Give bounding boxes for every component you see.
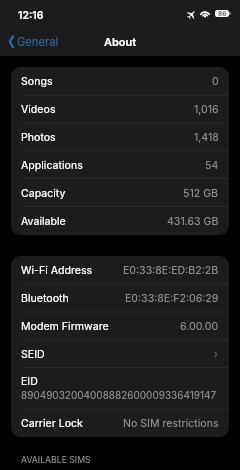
staticText: Bluetooth xyxy=(21,292,69,305)
other: Battery 86 percent xyxy=(215,10,229,17)
staticText: General xyxy=(17,35,59,49)
button[interactable]: SEID xyxy=(11,340,229,368)
staticText: Photos xyxy=(21,131,56,144)
staticText: 431.63 GB xyxy=(167,215,219,228)
staticText: Applications xyxy=(21,159,83,172)
staticText: 6.00.00 xyxy=(180,320,219,333)
staticText: Songs xyxy=(21,75,53,88)
button[interactable]: General xyxy=(4,32,65,48)
staticText: AVAILABLE SIMS xyxy=(21,455,91,466)
staticText: Modem Firmware xyxy=(21,320,109,333)
staticText: Capacity xyxy=(21,187,66,200)
button[interactable]: Photos xyxy=(11,123,229,151)
staticText: 1,016 xyxy=(194,103,219,116)
other: Wi-Fi xyxy=(200,10,210,17)
staticText: 12:16 xyxy=(18,9,44,22)
button[interactable]: Bluetooth xyxy=(11,284,229,312)
button[interactable]: Available xyxy=(11,207,229,235)
staticText: 54 xyxy=(205,159,219,172)
staticText: 512 GB xyxy=(183,187,219,200)
other: Airplane mode xyxy=(185,8,198,21)
button[interactable]: Videos xyxy=(11,95,229,123)
staticText: Wi-Fi Address xyxy=(21,264,93,277)
button[interactable]: Capacity xyxy=(11,179,229,207)
staticText: E0:33:8E:F2:06:29 xyxy=(125,292,219,305)
staticText: Available xyxy=(21,215,66,228)
button[interactable]: Carrier Lock xyxy=(11,410,229,437)
button[interactable]: Wi-Fi Address xyxy=(11,256,229,284)
staticText: Videos xyxy=(21,103,56,116)
button[interactable]: Applications xyxy=(11,151,229,179)
staticText: 1,418 xyxy=(194,131,219,144)
staticText: 86 xyxy=(218,10,227,17)
staticText: No SIM restrictions xyxy=(123,417,219,430)
button[interactable]: Modem Firmware xyxy=(11,312,229,340)
staticText: E0:33:8E:ED:B2:2B xyxy=(123,264,219,277)
button[interactable]: EID xyxy=(11,368,229,410)
staticText: Carrier Lock xyxy=(21,417,83,430)
staticText: 0 xyxy=(212,75,219,88)
staticText: 89049032004008882600009336419147 xyxy=(21,389,217,401)
staticText: SEID xyxy=(21,348,45,361)
staticText: About xyxy=(104,35,137,48)
button[interactable]: Songs xyxy=(11,67,229,95)
staticText: EID xyxy=(21,375,38,388)
